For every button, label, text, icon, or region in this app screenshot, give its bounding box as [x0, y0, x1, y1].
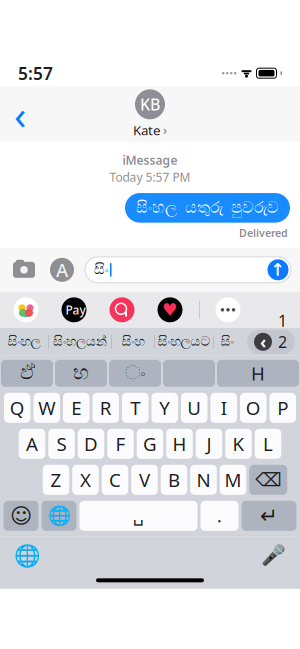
button[interactable]: ␣ — [79, 501, 197, 531]
staticText: Q — [10, 395, 25, 420]
staticText: . — [217, 504, 222, 527]
button[interactable]: සිංහ — [112, 329, 154, 355]
button[interactable]: Back — [0, 92, 40, 136]
staticText: සිංහල — [7, 335, 40, 348]
staticText: U — [187, 395, 201, 420]
button[interactable]: E — [63, 393, 89, 423]
button[interactable]: O — [240, 393, 266, 423]
button[interactable]: B — [161, 465, 187, 495]
button[interactable]: Digital Touch — [146, 294, 194, 326]
staticText: Kate — [133, 121, 161, 139]
staticText: H — [172, 431, 186, 456]
staticText: G — [143, 431, 157, 456]
button[interactable]: V — [131, 465, 158, 495]
staticText: iMessage — [122, 152, 177, 168]
staticText: ↑ — [270, 260, 285, 280]
staticText: D — [84, 431, 98, 456]
button[interactable]: Change keyboard — [10, 540, 44, 570]
button[interactable]: Dictate — [256, 540, 290, 570]
button[interactable]: Return — [241, 501, 296, 531]
staticText: Y — [159, 395, 170, 420]
button[interactable]: C — [102, 465, 128, 495]
staticText: සිංහලයන් — [53, 335, 107, 348]
staticText: S — [56, 431, 66, 456]
staticText: O — [246, 395, 261, 420]
staticText: ‹ — [260, 330, 266, 353]
staticText: T — [130, 395, 140, 420]
button[interactable]: Q — [4, 393, 30, 423]
staticText: සිංහලයට — [157, 335, 210, 348]
button[interactable]: සිං — [214, 329, 240, 355]
button[interactable]: W — [33, 393, 60, 423]
button[interactable]: F — [107, 429, 134, 459]
button[interactable]: සිංහලයට — [155, 329, 213, 355]
button[interactable]: P — [269, 393, 296, 423]
staticText: Z — [50, 467, 61, 492]
staticText: 🌐 — [47, 505, 70, 526]
button[interactable]: . — [200, 501, 238, 531]
button[interactable] — [163, 360, 215, 387]
button[interactable]: H — [166, 429, 193, 459]
button[interactable]: Apple Pay — [50, 294, 98, 326]
button[interactable]: X — [72, 465, 99, 495]
staticText: සිං — [220, 335, 233, 348]
button[interactable]: N — [190, 465, 217, 495]
button[interactable]: ඵ් — [1, 360, 53, 387]
staticText: X — [80, 467, 91, 492]
button[interactable]: S — [48, 429, 75, 459]
staticText: › — [163, 122, 167, 138]
staticText: ං — [124, 364, 145, 383]
staticText: J — [206, 431, 211, 456]
button[interactable]: සිංහලයන් — [49, 329, 111, 355]
staticText: N — [196, 467, 210, 492]
button[interactable]: H — [217, 360, 299, 387]
button[interactable]: Delete — [249, 465, 287, 495]
button[interactable]: Images — [98, 294, 146, 326]
button[interactable]: සිං — [85, 257, 291, 283]
staticText: Today 5:57 PM — [109, 169, 190, 185]
button[interactable]: T — [122, 393, 148, 423]
staticText: W — [38, 395, 55, 420]
button[interactable]: G — [137, 429, 163, 459]
staticText: P — [277, 395, 288, 420]
staticText: සිංහල යතුරු පුවරුව — [136, 200, 279, 216]
button[interactable]: D — [78, 429, 104, 459]
button[interactable]: A — [19, 429, 45, 459]
button[interactable]: More — [205, 294, 251, 326]
staticText: A — [56, 257, 68, 282]
button[interactable]: Next keyboard — [41, 501, 76, 531]
staticText: E — [71, 395, 81, 420]
staticText: 12# — [278, 310, 288, 374]
button[interactable]: J — [196, 429, 222, 459]
staticText: 🌐 — [13, 543, 40, 567]
staticText: ♥ — [162, 300, 178, 320]
button[interactable]: සිංහල — [0, 329, 48, 355]
button[interactable]: L — [255, 429, 281, 459]
button[interactable]: Numbers — [247, 330, 295, 354]
staticText: ↵ — [260, 504, 278, 528]
staticText: ␣ — [133, 506, 144, 526]
button[interactable]: App Store — [48, 255, 76, 285]
button[interactable]: ං — [109, 360, 161, 387]
staticText: F — [115, 431, 125, 456]
button[interactable]: R — [92, 393, 119, 423]
staticText: ‹ — [14, 88, 26, 141]
button[interactable]: U — [181, 393, 207, 423]
button[interactable]: K — [225, 429, 252, 459]
button[interactable]: භ — [55, 360, 107, 387]
button[interactable]: Photos — [2, 294, 50, 326]
staticText: ඵ් — [20, 364, 34, 383]
staticText: භ — [73, 364, 89, 383]
staticText: සිංහ — [121, 335, 144, 348]
staticText: KB — [140, 94, 160, 115]
staticText: C — [109, 467, 121, 492]
button[interactable]: Z — [43, 465, 69, 495]
button[interactable]: Emoji — [3, 501, 38, 531]
staticText: B — [168, 467, 180, 492]
button[interactable]: I — [210, 393, 237, 423]
button[interactable]: Y — [151, 393, 178, 423]
button[interactable]: M — [220, 465, 246, 495]
staticText: M — [224, 467, 241, 492]
staticText: H — [251, 361, 265, 386]
button[interactable]: Camera — [9, 255, 39, 285]
